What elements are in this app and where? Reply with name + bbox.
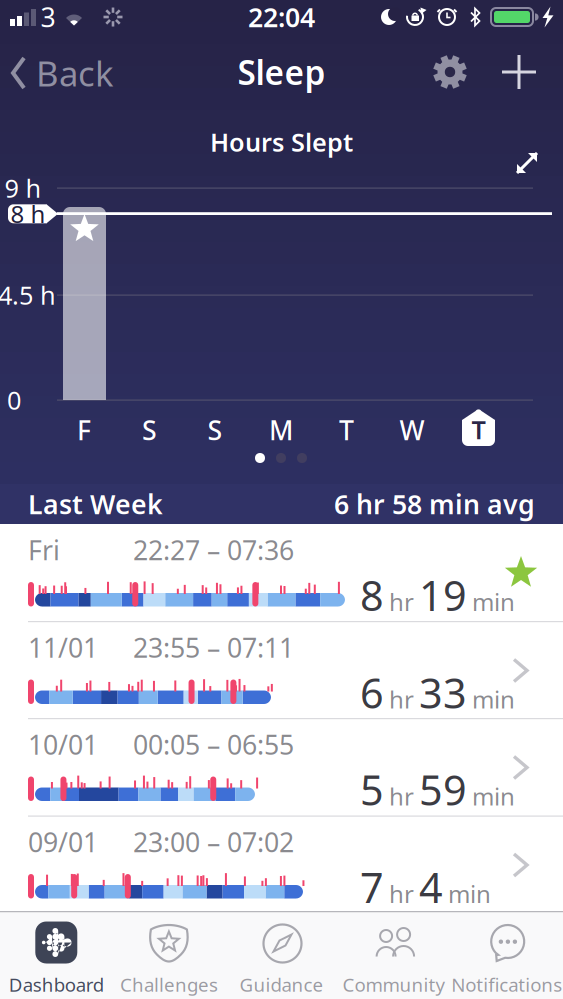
button[interactable]: 11/01 <box>0 621 563 718</box>
staticText: Hours Slept <box>210 125 353 159</box>
staticText: min <box>472 586 515 618</box>
staticText: Last Week <box>28 486 163 522</box>
staticText: 10/01 <box>28 727 98 762</box>
staticText: min <box>472 683 515 715</box>
staticText: 23:00 – 07:02 <box>133 824 294 860</box>
staticText: M <box>269 412 293 448</box>
staticText: 6 <box>360 665 384 720</box>
staticText: Fri <box>28 532 60 568</box>
staticText: W <box>399 412 424 448</box>
staticText: 09/01 <box>28 824 98 860</box>
staticText: 22:04 <box>248 0 315 35</box>
staticText: hr <box>389 878 414 910</box>
staticText: 8 h <box>10 198 45 230</box>
staticText: 11/01 <box>28 630 98 665</box>
staticText: Back <box>36 50 114 96</box>
staticText: 5 <box>360 762 384 817</box>
staticText: Challenges <box>120 972 218 997</box>
staticText: 9 h <box>4 171 41 205</box>
button[interactable]: Fri <box>0 524 563 621</box>
staticText: Community <box>343 972 446 997</box>
staticText: 23:55 – 07:11 <box>133 630 294 665</box>
button[interactable]: Community <box>338 912 450 998</box>
staticText: min <box>448 878 491 910</box>
staticText: 33 <box>419 665 467 720</box>
staticText: 19 <box>419 568 467 622</box>
staticText: T <box>339 412 354 448</box>
staticText: hr <box>389 683 414 715</box>
staticText: 3 <box>40 0 55 35</box>
staticText: Guidance <box>239 972 323 997</box>
button[interactable]: Challenges <box>113 912 225 998</box>
staticText: Notifications <box>451 972 562 997</box>
staticText: min <box>472 780 515 812</box>
button[interactable]: 09/01 <box>0 816 563 913</box>
staticText: 00:05 – 06:55 <box>133 727 294 762</box>
staticText: F <box>77 412 91 448</box>
staticText: S <box>142 412 157 448</box>
staticText: Sleep <box>237 50 325 94</box>
button[interactable]: Back <box>10 40 114 106</box>
button[interactable]: Settings <box>428 50 472 94</box>
button[interactable]: Add sleep log <box>497 50 541 94</box>
staticText: hr <box>389 780 414 812</box>
staticText: 0 <box>7 383 21 417</box>
staticText: hr <box>389 586 414 618</box>
staticText: T <box>471 413 485 446</box>
staticText: S <box>207 412 222 448</box>
staticText: 4.5 h <box>0 278 56 312</box>
staticText: 4 <box>419 860 443 914</box>
staticText: 22:27 – 07:36 <box>133 532 294 568</box>
staticText: 8 <box>360 568 384 622</box>
staticText: 59 <box>419 762 467 817</box>
staticText: 6 hr 58 min avg <box>334 486 535 522</box>
button[interactable]: Guidance <box>225 912 337 998</box>
staticText: Dashboard <box>9 972 104 997</box>
button[interactable]: 10/01 <box>0 718 563 815</box>
button[interactable]: Notifications <box>451 912 563 998</box>
button[interactable]: Expand chart <box>509 145 545 181</box>
staticText: 7 <box>360 860 384 914</box>
button[interactable]: Dashboard <box>0 912 112 998</box>
